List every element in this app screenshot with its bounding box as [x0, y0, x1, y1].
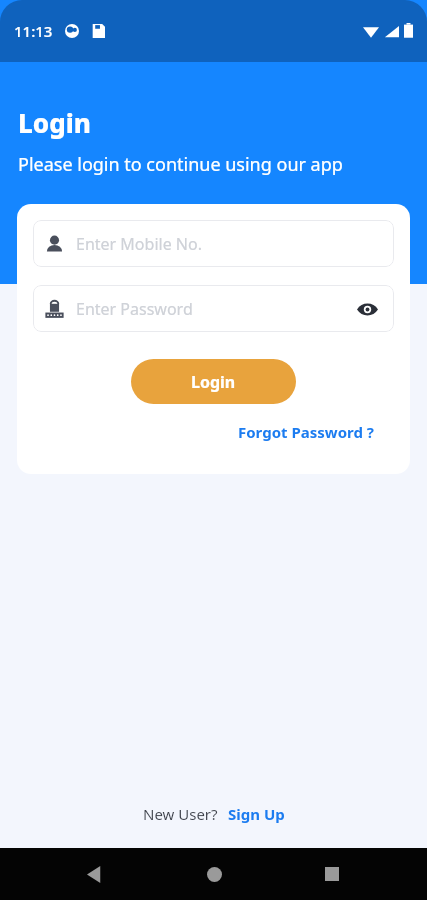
button[interactable]: Enter Mobile No.	[33, 220, 394, 267]
staticText: New User?	[143, 804, 218, 824]
button[interactable]: Home	[194, 854, 234, 894]
button[interactable]: Recent apps	[312, 854, 352, 894]
button[interactable]: Enter Password	[33, 285, 394, 332]
button[interactable]: Back	[75, 854, 115, 894]
staticText: Login	[18, 105, 91, 140]
staticText: Forgot Password ?	[238, 422, 374, 442]
button[interactable]: Show password	[350, 292, 384, 326]
staticText: 11:13	[14, 21, 53, 41]
staticText: Enter Mobile No.	[76, 233, 202, 255]
button[interactable]: Login	[131, 359, 296, 404]
staticText: Sign Up	[228, 804, 285, 824]
staticText: Please login to continue using our app	[18, 152, 343, 177]
staticText: Enter Password	[76, 298, 193, 320]
button[interactable]: Forgot Password ?	[238, 418, 374, 446]
staticText: Login	[191, 371, 236, 393]
button[interactable]: Sign Up	[228, 804, 285, 824]
